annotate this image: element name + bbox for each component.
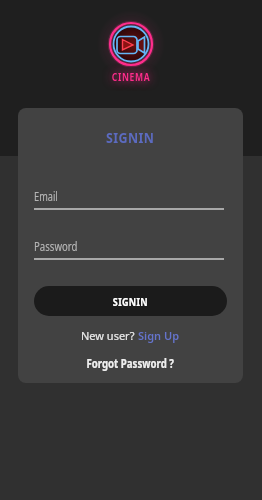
- button[interactable]: Sign Up: [138, 328, 180, 343]
- staticText: New user?: [81, 328, 138, 343]
- button[interactable]: SIGNIN: [34, 286, 227, 316]
- staticText: SIGNIN: [106, 127, 155, 147]
- staticText: CINEMA: [29, 69, 233, 84]
- staticText: Email: [34, 187, 171, 205]
- staticText: SIGNIN: [113, 294, 148, 309]
- button[interactable]: Forgot Password ?: [78, 356, 183, 372]
- staticText: Password: [34, 237, 177, 255]
